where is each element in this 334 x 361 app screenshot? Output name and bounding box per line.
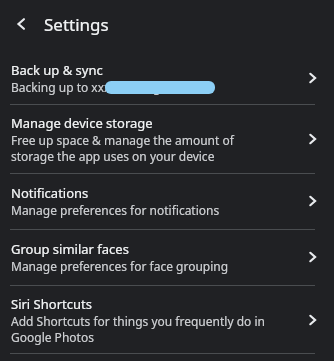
button[interactable]: Manage device storage xyxy=(0,105,334,173)
button[interactable]: Notifications xyxy=(300,189,324,213)
staticText: Add Shortcuts for things you frequently … xyxy=(11,313,265,329)
staticText: Notifications xyxy=(11,184,89,202)
staticText: storage the app uses on your device xyxy=(11,148,215,164)
staticText: Manage device storage xyxy=(11,114,153,132)
staticText: Siri Shortcuts xyxy=(11,295,92,313)
staticText: Google Photos xyxy=(11,329,94,345)
button[interactable]: Notifications xyxy=(0,174,334,229)
staticText: Group similar faces xyxy=(11,240,129,258)
button[interactable]: Siri Shortcuts xyxy=(0,286,334,353)
staticText: Free up space & manage the amount of xyxy=(11,132,234,148)
button[interactable]: Back up & sync xyxy=(0,54,334,104)
staticText: Manage preferences for face grouping xyxy=(11,258,229,274)
staticText: Settings xyxy=(44,13,109,36)
button[interactable]: Group similar faces xyxy=(0,230,334,285)
button[interactable]: Back xyxy=(6,8,38,40)
button[interactable]: Group similar faces xyxy=(300,245,324,269)
staticText: Manage preferences for notifications xyxy=(11,202,220,218)
button[interactable]: Siri Shortcuts xyxy=(300,308,324,332)
button[interactable]: Manage device storage xyxy=(300,127,324,151)
staticText: Back up & sync xyxy=(11,61,103,79)
staticText: Backing up to xxxxxxxx@gmail.com xyxy=(11,79,212,95)
button[interactable]: Back up & sync xyxy=(300,66,324,90)
